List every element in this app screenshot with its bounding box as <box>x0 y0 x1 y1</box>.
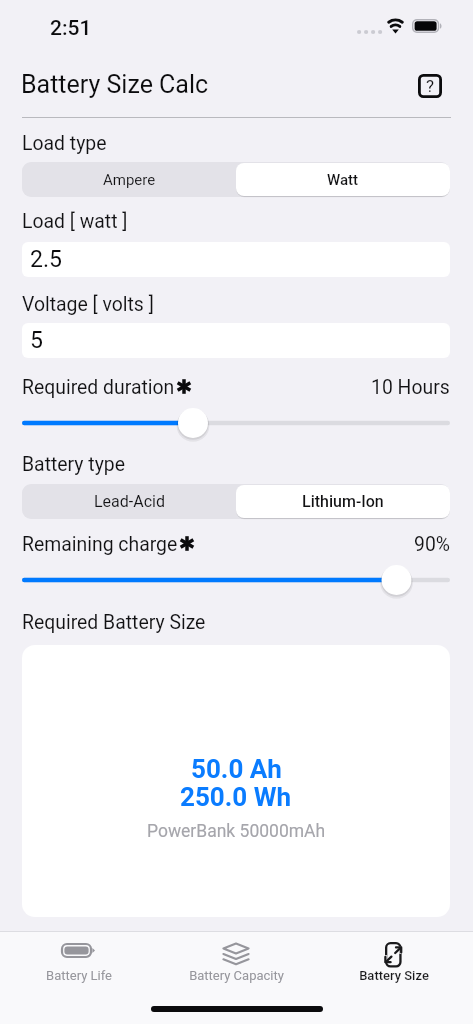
button[interactable]: Slider <box>6 405 466 441</box>
staticText: 2:51 <box>50 16 92 41</box>
staticText: Lead-Acid <box>94 492 165 511</box>
button[interactable]: Battery Size <box>315 931 473 993</box>
staticText: Battery Size <box>359 968 429 983</box>
button[interactable]: Ampere <box>22 162 236 197</box>
staticText: Battery Life <box>46 968 112 983</box>
button[interactable]: Lead-Acid <box>22 484 236 519</box>
staticText: Battery Size Calc <box>21 70 209 99</box>
staticText: Required duration <box>22 376 175 399</box>
staticText: Required Battery Size <box>22 611 206 634</box>
button[interactable]: 2.5 <box>22 242 450 277</box>
staticText: Voltage [ volts ] <box>22 293 154 316</box>
staticText: Load [ watt ] <box>22 210 128 233</box>
staticText: 50.0 Ah <box>191 754 282 784</box>
staticText: 250.0 Wh <box>180 782 292 812</box>
staticText: ? <box>426 76 435 96</box>
staticText: 5 <box>30 327 43 354</box>
button[interactable]: Battery Capacity <box>157 931 315 993</box>
staticText: 10 Hours <box>371 376 450 399</box>
button[interactable]: Battery Life <box>0 931 157 993</box>
button[interactable]: Watt <box>236 163 450 196</box>
staticText: Battery type <box>22 453 126 476</box>
button[interactable] <box>236 162 450 197</box>
button[interactable]: Lithium-Ion <box>236 485 450 518</box>
staticText: Watt <box>327 171 359 189</box>
button[interactable]: 5 <box>22 323 450 358</box>
staticText: Remaining charge <box>22 533 178 556</box>
button[interactable] <box>236 484 450 519</box>
staticText: Load type <box>22 132 107 155</box>
staticText: Lithium-Ion <box>302 492 384 511</box>
staticText: Ampere <box>103 171 156 189</box>
staticText: 2.5 <box>30 246 62 273</box>
button[interactable]: Slider <box>6 562 466 598</box>
staticText: Battery Capacity <box>189 968 284 983</box>
staticText: 90% <box>414 533 450 556</box>
button[interactable]: Help <box>410 68 450 104</box>
staticText: PowerBank 50000mAh <box>147 821 326 842</box>
